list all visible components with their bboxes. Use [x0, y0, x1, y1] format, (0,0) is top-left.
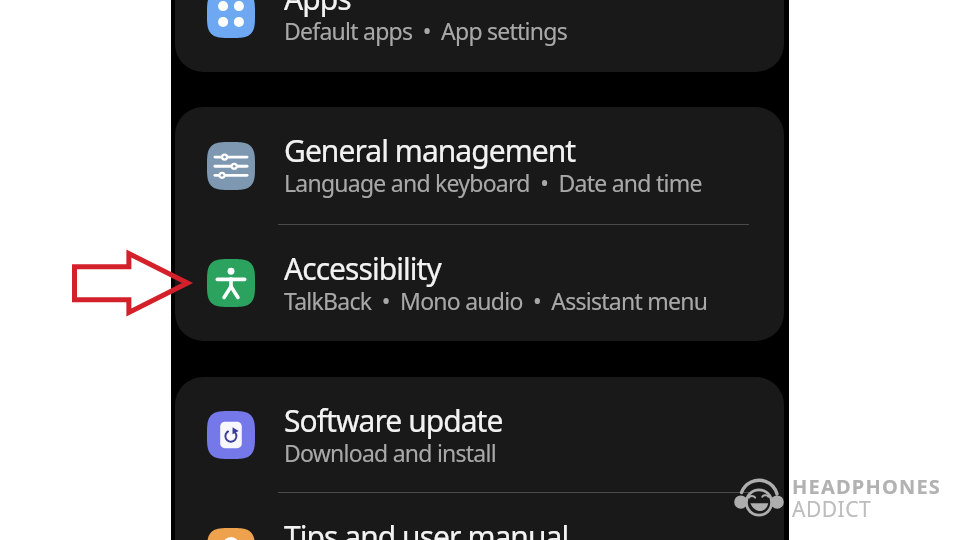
button[interactable]: Apps [175, 0, 784, 72]
button[interactable]: Arrow pointing to Accessibility [72, 251, 190, 315]
staticText: Software update [284, 400, 503, 441]
other: HeadphonesAddict logo [735, 474, 783, 520]
button[interactable]: Software update [175, 377, 784, 492]
staticText: TalkBack • Mono audio • Assistant menu [284, 285, 708, 316]
staticText: Download and install [284, 437, 496, 468]
staticText: Accessibility [284, 248, 441, 289]
staticText: Tips and user manual [284, 516, 569, 540]
button[interactable]: General management [175, 107, 784, 224]
staticText: Apps [284, 0, 351, 19]
staticText: Default apps • App settings [284, 15, 567, 46]
staticText: ADDICT [792, 495, 872, 524]
staticText: General management [284, 130, 576, 171]
button[interactable]: Accessibility [175, 225, 784, 341]
staticText: Language and keyboard • Date and time [284, 167, 702, 198]
staticText: HEADPHONES [792, 473, 941, 500]
button[interactable]: Tips and user manual [175, 493, 784, 540]
